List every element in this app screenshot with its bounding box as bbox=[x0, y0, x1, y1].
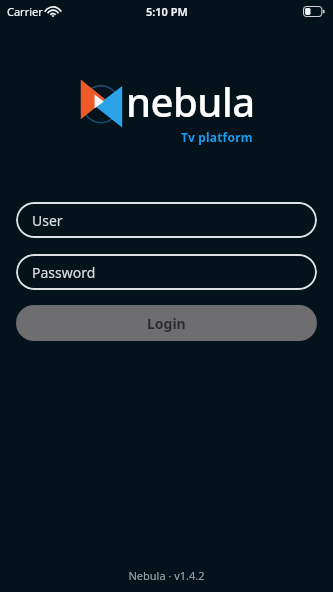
button[interactable]: User bbox=[16, 202, 317, 238]
button[interactable]: Login bbox=[16, 305, 317, 341]
staticText: nebula bbox=[126, 74, 255, 128]
staticText: Login bbox=[147, 314, 186, 333]
staticText: Carrier bbox=[7, 4, 43, 19]
staticText: 5:10 PM bbox=[146, 4, 188, 19]
staticText: Tv platform bbox=[181, 129, 253, 145]
staticText: Password bbox=[32, 263, 96, 282]
other: Nebula logo bbox=[78, 74, 124, 128]
button[interactable]: Password bbox=[16, 254, 317, 290]
staticText: Nebula · v1.4.2 bbox=[0, 568, 333, 583]
staticText: User bbox=[32, 211, 63, 230]
